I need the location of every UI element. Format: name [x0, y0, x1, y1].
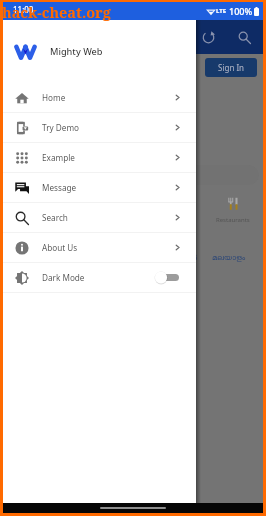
staticText: Search [42, 212, 68, 223]
button[interactable]: Dark Mode [3, 263, 196, 292]
button[interactable]: Refresh [197, 26, 219, 48]
button[interactable]: Sign In [205, 58, 257, 77]
button[interactable]: Search [3, 203, 196, 232]
staticText: About Us [42, 242, 78, 253]
button[interactable]: Restaurants [208, 197, 258, 224]
staticText: 11:00 [13, 4, 34, 15]
button[interactable]: Example [3, 143, 196, 172]
staticText: hack-cheat.org [2, 2, 111, 22]
staticText: LTE [216, 7, 227, 15]
staticText: Home [42, 92, 66, 103]
staticText: ൾ [189, 254, 198, 262]
staticText: മലയാളം [212, 254, 246, 262]
staticText: Sign In [218, 62, 245, 73]
staticText: 100% [229, 5, 253, 17]
staticText: Message [42, 182, 77, 193]
staticText: Restaurants [216, 216, 250, 224]
staticText: Dark Mode [42, 272, 85, 283]
button[interactable]: Try Demo [3, 113, 196, 142]
button[interactable]: Search [233, 26, 255, 48]
button[interactable]: Message [3, 173, 196, 202]
button[interactable]: About Us [3, 233, 196, 262]
staticText: Try Demo [42, 122, 80, 133]
staticText: Example [42, 152, 75, 163]
staticText: Mighty Web [50, 45, 103, 58]
button[interactable]: Home [3, 83, 196, 112]
